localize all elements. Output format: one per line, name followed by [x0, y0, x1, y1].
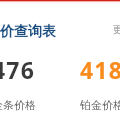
- staticText: 铂金价格: [80, 98, 120, 112]
- button[interactable]: 价查询表: [0, 23, 56, 41]
- button[interactable]: 418: [80, 54, 120, 112]
- staticText: 金条价格: [0, 98, 36, 112]
- staticText: 476: [0, 54, 36, 85]
- staticText: 更多: [113, 23, 120, 36]
- button[interactable]: 476: [0, 54, 36, 112]
- staticText: 418: [80, 54, 120, 85]
- button[interactable]: 更多: [113, 23, 120, 36]
